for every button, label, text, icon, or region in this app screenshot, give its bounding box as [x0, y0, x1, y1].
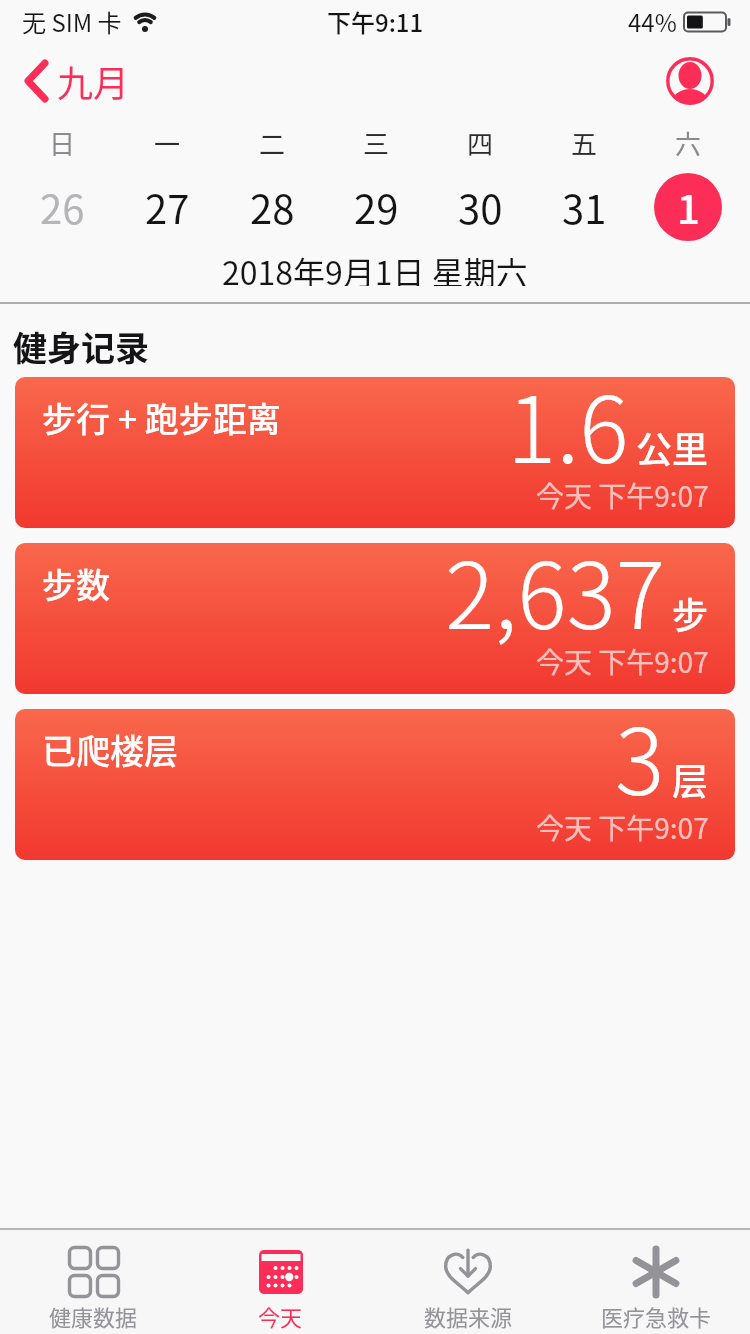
staticText: 健康数据 — [49, 1300, 138, 1332]
staticText: 医疗急救卡 — [601, 1300, 712, 1332]
button[interactable]: 步行 + 跑步距离 — [15, 377, 735, 528]
staticText: 九月 — [57, 55, 130, 107]
staticText: 今天 下午9:07 — [536, 641, 709, 682]
staticText: 步 — [672, 587, 709, 639]
staticText: 2018年9月1日 星期六 — [222, 248, 528, 286]
staticText: 步行 + 跑步距离 — [42, 393, 281, 442]
staticText: 26 — [40, 178, 85, 236]
button[interactable]: 步数 — [15, 543, 735, 694]
staticText: 30 — [458, 178, 503, 236]
button[interactable]: 数据来源 — [374, 1230, 562, 1334]
staticText: 1.6 — [507, 377, 629, 489]
staticText: 无 SIM 卡 — [22, 4, 122, 39]
button[interactable] — [666, 57, 714, 105]
button[interactable]: 已爬楼层 — [15, 709, 735, 860]
button[interactable]: 九月 — [24, 55, 130, 107]
staticText: 健身记录 — [13, 322, 149, 371]
button[interactable]: 医疗急救卡 — [562, 1230, 750, 1334]
staticText: 今天 — [258, 1300, 303, 1332]
button[interactable]: 健康数据 — [0, 1230, 187, 1334]
staticText: 31 — [562, 178, 607, 236]
staticText: 已爬楼层 — [42, 725, 178, 774]
button[interactable]: 今天 — [187, 1230, 374, 1334]
staticText: 一 — [154, 124, 181, 162]
staticText: 今天 下午9:07 — [536, 807, 709, 848]
staticText: 下午9:11 — [327, 4, 424, 39]
staticText: 28 — [250, 178, 295, 236]
staticText: 今天 下午9:07 — [536, 475, 709, 516]
staticText: 29 — [354, 178, 399, 236]
staticText: 四 — [467, 124, 494, 162]
staticText: 27 — [145, 178, 190, 236]
staticText: 44% — [628, 4, 677, 39]
staticText: 公里 — [636, 421, 709, 473]
staticText: 日 — [49, 124, 76, 162]
staticText: 2,637 — [445, 543, 665, 655]
staticText: 六 — [675, 124, 702, 162]
staticText: 1 — [677, 178, 700, 236]
staticText: 步数 — [42, 559, 110, 608]
staticText: 层 — [672, 753, 709, 805]
staticText: 3 — [615, 709, 665, 821]
staticText: 五 — [571, 124, 598, 162]
staticText: 二 — [259, 124, 286, 162]
staticText: 三 — [363, 124, 390, 162]
staticText: 数据来源 — [424, 1300, 513, 1332]
button[interactable]: 1 — [654, 173, 722, 241]
